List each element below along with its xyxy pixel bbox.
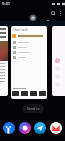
button[interactable]: [11, 55, 47, 59]
staticText: 9:41: [2, 1, 10, 6]
staticText: Send to: [27, 106, 40, 111]
staticText: Share with: [13, 28, 28, 32]
button[interactable]: [11, 33, 47, 38]
button[interactable]: [52, 26, 65, 96]
button[interactable]: [0, 26, 8, 96]
button[interactable]: Gmail: [50, 122, 62, 134]
button[interactable]: [11, 45, 47, 49]
button[interactable]: More options: [57, 10, 63, 16]
button[interactable]: [11, 50, 47, 54]
button[interactable]: Messenger: [19, 122, 31, 134]
button[interactable]: [11, 40, 47, 44]
button[interactable]: Send to: [22, 104, 44, 113]
button[interactable]: Search: [50, 10, 56, 16]
button[interactable]: Facebook: [3, 122, 15, 134]
button[interactable]: Telegram: [34, 122, 46, 134]
